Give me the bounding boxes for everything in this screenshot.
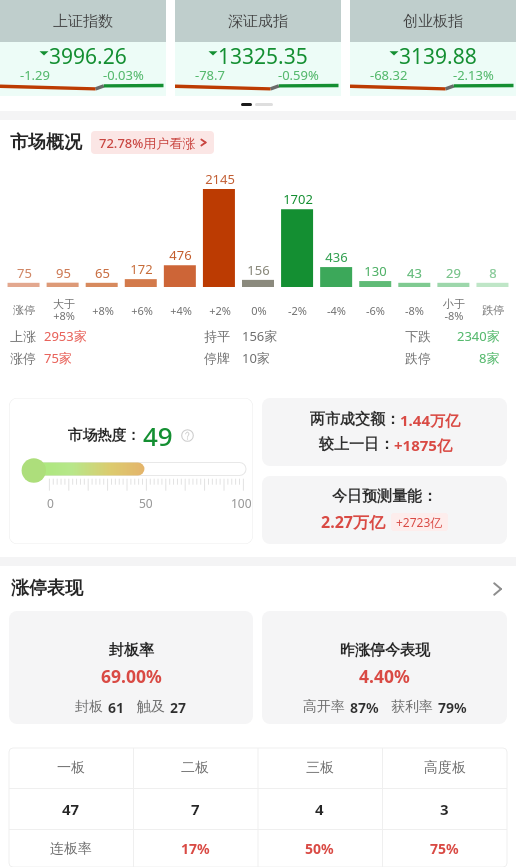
staticText: 75家 bbox=[44, 349, 72, 367]
staticText: -68.32 bbox=[370, 66, 408, 82]
staticText: 27 bbox=[170, 698, 187, 717]
staticText: 3 bbox=[440, 799, 449, 819]
staticText: 75% bbox=[430, 839, 459, 858]
staticText: 1702 bbox=[283, 190, 313, 208]
staticText: 65 bbox=[95, 264, 110, 282]
staticText: 61 bbox=[108, 698, 125, 717]
staticText: 跌停 bbox=[405, 350, 431, 366]
staticText: 0% bbox=[251, 303, 267, 318]
staticText: -0.03% bbox=[103, 66, 144, 82]
button[interactable]: 今日预测量能： bbox=[262, 476, 507, 544]
staticText: 市场热度： bbox=[68, 426, 141, 444]
button[interactable]: 72.78%用户看涨 bbox=[91, 131, 214, 154]
button[interactable]: 50% bbox=[257, 830, 382, 867]
button[interactable]: 47 bbox=[9, 789, 133, 829]
staticText: +8% bbox=[92, 303, 114, 318]
staticText: 69.00% bbox=[101, 664, 162, 688]
staticText: 43 bbox=[407, 264, 422, 282]
button[interactable]: 上证指数 bbox=[0, 0, 166, 96]
staticText: 17% bbox=[181, 839, 210, 858]
button[interactable]: 高度板 bbox=[382, 748, 507, 788]
button[interactable]: 一板 bbox=[9, 748, 133, 788]
staticText: 50% bbox=[305, 839, 334, 858]
staticText: -2% bbox=[288, 303, 307, 318]
staticText: -6% bbox=[366, 303, 385, 318]
staticText: -2.13% bbox=[453, 66, 494, 82]
staticText: 50 bbox=[139, 495, 153, 511]
staticText: 市场概况 bbox=[10, 131, 82, 154]
button[interactable]: 创业板指 bbox=[350, 0, 516, 96]
button[interactable]: 7 bbox=[133, 789, 257, 829]
staticText: 49 bbox=[143, 418, 173, 453]
staticText: 29 bbox=[446, 264, 461, 282]
button[interactable]: 市场热度： bbox=[9, 398, 253, 544]
staticText: +1875亿 bbox=[394, 435, 452, 455]
staticText: 72.78%用户看涨 bbox=[99, 134, 196, 152]
button[interactable]: 三板 bbox=[257, 748, 382, 788]
staticText: 95 bbox=[56, 264, 71, 282]
staticText: 涨停 bbox=[10, 350, 36, 366]
staticText: 476 bbox=[169, 246, 192, 264]
staticText: 停牌 bbox=[204, 350, 230, 366]
button[interactable]: 4 bbox=[257, 789, 382, 829]
button[interactable]: 75% bbox=[382, 830, 507, 867]
staticText: 小于 -8% bbox=[443, 297, 465, 323]
button[interactable]: 封板率 bbox=[9, 611, 253, 724]
staticText: 436 bbox=[325, 248, 348, 266]
staticText: 创业板指 bbox=[403, 12, 463, 31]
staticText: 涨停 bbox=[13, 303, 35, 317]
button[interactable]: 昨涨停今表现 bbox=[262, 611, 507, 724]
button[interactable]: 3 bbox=[382, 789, 507, 829]
staticText: 87% bbox=[350, 698, 379, 717]
staticText: +2% bbox=[209, 303, 231, 318]
staticText: 三板 bbox=[306, 759, 334, 777]
staticText: 2.27万亿 bbox=[321, 511, 385, 533]
staticText: 47 bbox=[62, 799, 80, 819]
staticText: 上涨 bbox=[10, 328, 36, 344]
staticText: 涨停表现 bbox=[11, 577, 83, 600]
other: 说明 bbox=[181, 429, 194, 442]
button[interactable]: 17% bbox=[133, 830, 257, 867]
staticText: 封板 bbox=[75, 698, 103, 716]
staticText: 8家 bbox=[479, 349, 500, 367]
staticText: -78.7 bbox=[195, 66, 225, 82]
staticText: 3139.88 bbox=[399, 42, 477, 64]
staticText: 较上一日： bbox=[319, 435, 394, 454]
staticText: 130 bbox=[364, 262, 387, 280]
staticText: 下跌 bbox=[405, 328, 431, 344]
staticText: 8 bbox=[489, 264, 497, 282]
staticText: 172 bbox=[130, 260, 153, 278]
staticText: 二板 bbox=[181, 759, 209, 777]
staticText: 100 bbox=[231, 495, 252, 511]
staticText: 10家 bbox=[242, 349, 270, 367]
staticText: 0 bbox=[47, 495, 54, 511]
staticText: +2723亿 bbox=[396, 514, 443, 530]
staticText: 昨涨停今表现 bbox=[340, 641, 430, 660]
staticText: 两市成交额： bbox=[310, 410, 400, 429]
button[interactable]: 深证成指 bbox=[175, 0, 341, 96]
staticText: 79% bbox=[438, 698, 467, 717]
staticText: 156 bbox=[247, 261, 270, 279]
staticText: 一板 bbox=[57, 759, 85, 777]
staticText: 7 bbox=[191, 799, 200, 819]
button[interactable]: 两市成交额： bbox=[262, 398, 507, 466]
staticText: 获利率 bbox=[391, 698, 433, 716]
other: 查看更多 bbox=[493, 582, 502, 596]
staticText: 4.40% bbox=[359, 664, 410, 688]
staticText: 今日预测量能： bbox=[332, 487, 437, 506]
staticText: 触及 bbox=[137, 698, 165, 716]
button[interactable]: 二板 bbox=[133, 748, 257, 788]
button[interactable]: 连板率 bbox=[9, 830, 133, 867]
staticText: 2145 bbox=[205, 170, 235, 188]
staticText: 大于 +8% bbox=[53, 297, 75, 323]
staticText: 连板率 bbox=[50, 840, 92, 858]
staticText: 13325.35 bbox=[218, 42, 308, 64]
button[interactable]: 涨停表现 bbox=[11, 566, 502, 611]
staticText: 高开率 bbox=[303, 698, 345, 716]
staticText: 持平 bbox=[204, 328, 230, 344]
staticText: 1.44万亿 bbox=[400, 410, 460, 430]
staticText: 2340家 bbox=[457, 327, 500, 345]
staticText: +4% bbox=[170, 303, 192, 318]
staticText: 跌停 bbox=[482, 303, 504, 317]
staticText: 3996.26 bbox=[49, 42, 127, 64]
